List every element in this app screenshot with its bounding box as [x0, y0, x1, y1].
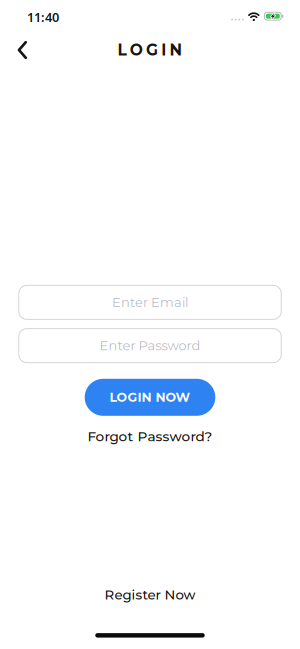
staticText: Forgot Password?: [87, 428, 212, 445]
button[interactable]: Forgot Password?: [87, 428, 212, 445]
staticText: O: [130, 41, 143, 59]
staticText: LOGIN NOW: [109, 390, 190, 405]
staticText: Enter Email: [112, 294, 188, 310]
staticText: 11:40: [27, 8, 59, 26]
button[interactable]: Enter Email: [19, 285, 281, 319]
staticText: Register Now: [104, 587, 195, 603]
staticText: L: [118, 41, 127, 59]
staticText: I: [161, 41, 166, 59]
staticText: N: [169, 41, 182, 59]
button[interactable]: LOGIN NOW: [85, 379, 215, 416]
staticText: Enter Password: [99, 338, 200, 353]
button[interactable]: [0, 35, 27, 65]
button[interactable]: Register Now: [104, 586, 195, 603]
button[interactable]: Enter Password: [19, 329, 281, 363]
staticText: G: [146, 41, 158, 59]
